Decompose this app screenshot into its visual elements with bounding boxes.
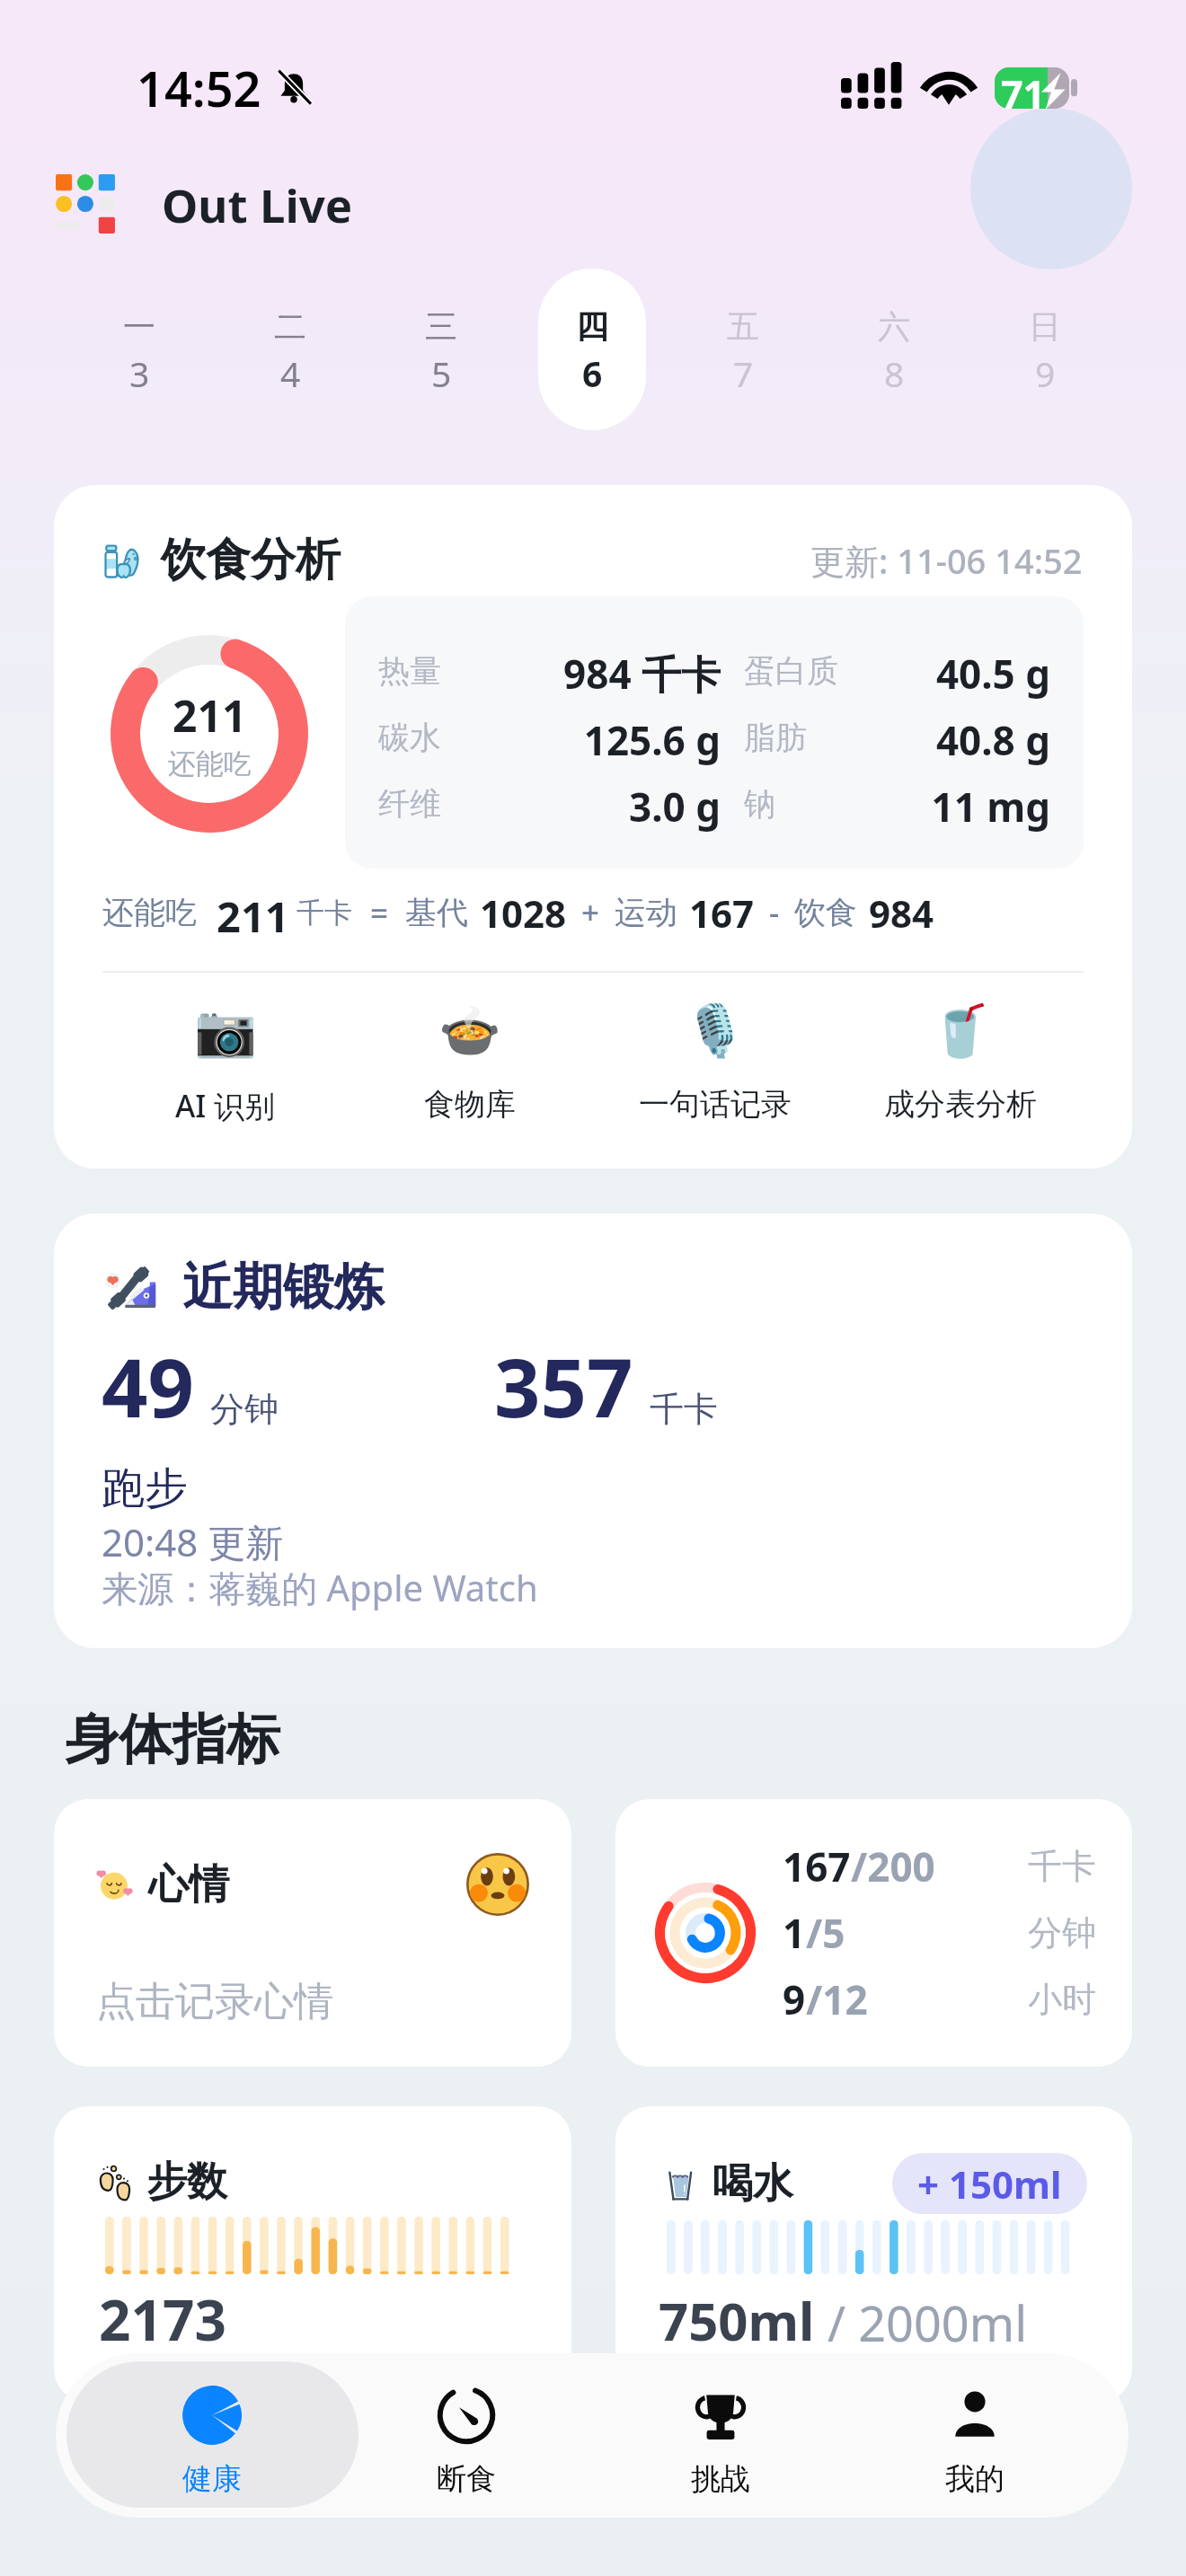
button[interactable]: 六 [840, 269, 948, 430]
button[interactable]: 日 [991, 269, 1099, 430]
staticText: 167 [783, 1839, 851, 1893]
staticText: 3 [129, 349, 150, 397]
button[interactable]: 挑战 [593, 2353, 847, 2518]
staticText: 成分表分析 [884, 1085, 1037, 1124]
staticText: - [769, 891, 780, 934]
staticText: /5 [806, 1906, 845, 1960]
button[interactable]: 🍲 [348, 1001, 592, 1124]
button[interactable]: 167 [615, 1799, 1132, 2067]
staticText: 6 [582, 349, 603, 397]
staticText: 我的 [945, 2460, 1005, 2498]
staticText: 千卡 [650, 1388, 718, 1431]
staticText: 3.0 g [378, 780, 721, 834]
staticText: 饮食分析 [161, 532, 341, 588]
button[interactable]: 🥤 [837, 1001, 1083, 1124]
staticText: 分钟 [1028, 1911, 1096, 1954]
staticText: = [370, 891, 389, 934]
staticText: 蛋白质 [744, 651, 838, 691]
staticText: 二 [274, 306, 306, 347]
staticText: 分钟 [210, 1388, 279, 1431]
staticText: 饮食 [794, 893, 857, 932]
button[interactable]: 四 [538, 269, 646, 430]
button[interactable]: 🎙️ [592, 1001, 837, 1124]
staticText: 六 [878, 306, 910, 347]
staticText: + 150ml [917, 2158, 1062, 2210]
button[interactable]: 步数 [54, 2106, 571, 2403]
button[interactable]: 二 [236, 269, 344, 430]
staticText: 71 [1001, 67, 1046, 109]
staticText: 一 [123, 306, 155, 347]
staticText: 断食 [437, 2460, 496, 2498]
staticText: 挑战 [691, 2460, 750, 2498]
staticText: 更新: 11-06 14:52 [810, 537, 1083, 584]
staticText: 2173 [99, 2281, 226, 2357]
staticText: 日 [1029, 306, 1061, 347]
staticText: 步数 [146, 2157, 227, 2208]
staticText: 钠 [744, 784, 775, 824]
staticText: /12 [806, 1972, 868, 2026]
staticText: 167 [689, 887, 755, 938]
button[interactable]: 📷 [103, 1001, 348, 1126]
staticText: 跑步 [102, 1461, 188, 1515]
button[interactable]: 近期锻炼 [54, 1213, 1132, 1648]
staticText: 点击记录心情 [96, 1977, 333, 2026]
button[interactable]: 三 [387, 269, 495, 430]
staticText: 碳水 [378, 718, 441, 757]
staticText: / 2000ml [815, 2289, 1028, 2356]
staticText: 五 [727, 306, 759, 347]
staticText: 40.8 g [744, 713, 1050, 767]
staticText: 还能吃 [102, 893, 197, 932]
staticText: 千卡 [1028, 1845, 1096, 1888]
staticText: AI 识别 [175, 1085, 276, 1126]
staticText: 热量 [378, 651, 441, 691]
staticText: 📷 [194, 1001, 257, 1061]
staticText: 三 [425, 306, 457, 347]
staticText: 纤维 [378, 784, 441, 824]
staticText: 40.5 g [744, 647, 1050, 701]
staticText: 9 [1035, 349, 1056, 397]
staticText: /200 [851, 1839, 935, 1893]
staticText: 211 [173, 686, 247, 745]
staticText: 125.6 g [378, 713, 721, 767]
button[interactable]: 我的 [847, 2353, 1102, 2518]
staticText: 🍲 [438, 1001, 501, 1061]
button[interactable]: 饮食分析 [54, 485, 1132, 1169]
staticText: Out Live [162, 173, 353, 235]
button[interactable]: Profile [970, 108, 1132, 269]
staticText: 984 千卡 [378, 647, 721, 701]
staticText: 357 [494, 1331, 633, 1442]
staticText: 4 [280, 349, 301, 397]
staticText: 小时 [1028, 1978, 1096, 2021]
staticText: 984 [869, 887, 934, 938]
staticText: 运动 [615, 893, 677, 932]
button[interactable]: 一 [85, 269, 193, 430]
staticText: 食物库 [424, 1085, 516, 1124]
button[interactable]: + 150ml [892, 2153, 1087, 2214]
other: Out Live logo [56, 174, 115, 234]
staticText: 🎙️ [684, 1001, 747, 1061]
button[interactable]: 断食 [339, 2353, 593, 2518]
staticText: 来源：蒋巍的 Apple Watch [102, 1563, 538, 1612]
staticText: 750ml [659, 2285, 815, 2356]
button[interactable]: 喝水 [615, 2106, 1132, 2403]
staticText: 近期锻炼 [182, 1256, 384, 1319]
staticText: 1028 [480, 887, 567, 938]
staticText: 20:48 更新 [102, 1516, 284, 1567]
staticText: 健康 [182, 2460, 242, 2498]
staticText: 49 [102, 1331, 194, 1442]
staticText: 5 [431, 349, 452, 397]
staticText: 一句话记录 [639, 1085, 792, 1124]
staticText: 四 [576, 306, 608, 347]
staticText: 基代 [405, 893, 468, 932]
staticText: 8 [884, 349, 905, 397]
staticText: 还能吃 [168, 746, 252, 781]
staticText: + [581, 891, 600, 934]
button[interactable]: 五 [689, 269, 797, 430]
staticText: 7 [733, 349, 754, 397]
staticText: 14:52 [137, 55, 261, 121]
button[interactable]: 健康 [85, 2353, 339, 2518]
staticText: 🥤 [929, 1001, 992, 1061]
staticText: 脂肪 [744, 718, 807, 757]
staticText: 11 mg [744, 780, 1050, 834]
button[interactable]: 心情 [54, 1799, 571, 2067]
